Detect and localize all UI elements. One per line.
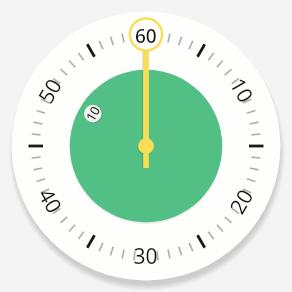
button[interactable] [0,0,292,292]
